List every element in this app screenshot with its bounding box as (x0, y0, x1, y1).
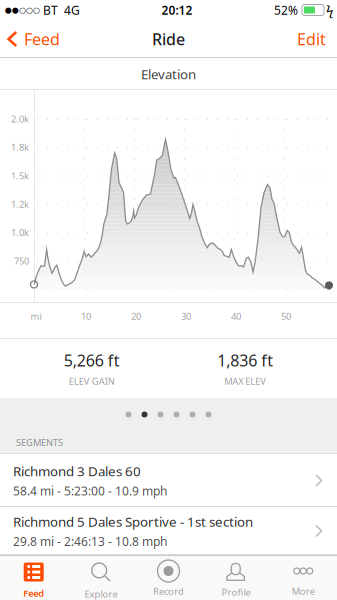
staticText: 2.0k (11, 113, 29, 125)
staticText: 1.0k (11, 226, 29, 239)
staticText: Richmond 3 Dales 60 (13, 462, 141, 480)
staticText: 30 (181, 310, 191, 322)
staticText: 50 (281, 310, 291, 322)
staticText: Richmond 5 Dales Sportive - 1st section (13, 513, 253, 530)
staticText: 5,266 ft (64, 350, 120, 371)
staticText: 52% (274, 2, 298, 18)
button[interactable]: Feed (0, 20, 70, 58)
staticText: ELEV GAIN (69, 375, 115, 387)
button[interactable]: More (270, 555, 337, 600)
staticText: Feed (24, 28, 60, 50)
staticText: ϟ (326, 1, 333, 19)
staticText: 1.2k (11, 198, 29, 210)
staticText: Elevation (141, 65, 196, 83)
button[interactable]: Feed (0, 555, 67, 600)
staticText: 1.5k (11, 169, 29, 182)
staticText: 58.4 mi - 5:23:00 - 10.9 mph (13, 483, 167, 499)
staticText: 1,836 ft (217, 350, 273, 371)
staticText: Explore (85, 588, 118, 600)
staticText: 10 (81, 310, 91, 322)
button[interactable]: Record (135, 555, 202, 600)
button[interactable]: Edit (286, 20, 337, 58)
staticText: Feed (23, 587, 44, 599)
staticText: 4G (58, 2, 80, 18)
staticText: mi (30, 310, 41, 322)
staticText: Record (153, 585, 184, 597)
button[interactable]: Explore (67, 555, 135, 600)
staticText: BT (40, 2, 58, 18)
staticText: Profile (221, 586, 250, 598)
staticText: 20:12 (161, 2, 192, 18)
staticText: ●●○○○ (5, 5, 40, 15)
staticText: MAX ELEV (224, 375, 266, 387)
button[interactable]: Profile (202, 555, 270, 600)
staticText: 20 (131, 310, 141, 322)
button[interactable]: Richmond 5 Dales Sportive - 1st section (0, 507, 337, 555)
staticText: 750 (14, 255, 29, 267)
staticText: 40 (231, 310, 241, 322)
staticText: 1.8k (11, 141, 29, 153)
staticText: SEGMENTS (16, 436, 63, 449)
staticText: 29.8 mi - 2:46:13 - 10.8 mph (13, 533, 167, 549)
staticText: Ride (152, 28, 185, 50)
staticText: More (292, 585, 315, 597)
staticText: Edit (297, 28, 326, 50)
button[interactable]: Richmond 3 Dales 60 (0, 454, 337, 507)
